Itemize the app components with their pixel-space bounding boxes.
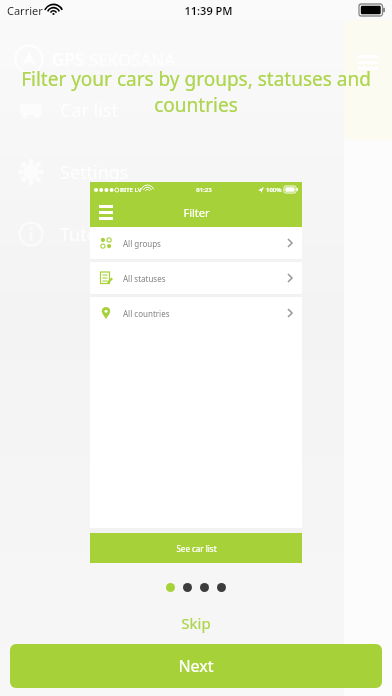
staticText: Tutorial	[60, 222, 125, 247]
staticText: Skip	[181, 613, 211, 633]
staticText: Filter your cars by groups, statuses and…	[16, 66, 376, 118]
staticText: Next	[178, 655, 214, 677]
staticText: Filter	[183, 205, 210, 220]
staticText: 11:39 PM	[184, 3, 233, 18]
staticText: Settings	[60, 160, 129, 185]
button[interactable]: All statuses	[90, 262, 302, 294]
button[interactable]: All countries	[90, 297, 302, 329]
button[interactable]: Next	[10, 644, 382, 688]
staticText: All statuses	[123, 273, 166, 284]
staticText: Carrier	[7, 3, 43, 18]
staticText: All groups	[123, 238, 161, 249]
staticText: 100%	[266, 186, 282, 194]
button[interactable]: Settings	[18, 150, 129, 194]
button[interactable]: Car list	[18, 88, 118, 132]
staticText: 01:23	[196, 186, 212, 194]
button[interactable]: Open navigation menu	[99, 205, 113, 220]
staticText: See car list	[176, 543, 217, 554]
button[interactable]: See car list	[90, 533, 302, 563]
button[interactable]: Menu	[358, 55, 378, 70]
button[interactable]: Tutorial	[18, 212, 125, 256]
button[interactable]: Skip	[0, 608, 392, 638]
button[interactable]: All groups	[90, 227, 302, 259]
staticText: All countries	[123, 308, 170, 319]
staticText: BITE LV	[120, 186, 142, 194]
